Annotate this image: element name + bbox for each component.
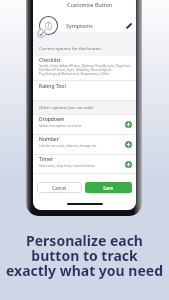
staticText: Start time, stop time, total duration (39, 163, 96, 168)
staticText: Current options for this button. (39, 45, 103, 51)
button[interactable] (33, 13, 136, 37)
staticText: Cancel (52, 185, 67, 191)
staticText: Dropdown (39, 116, 65, 123)
staticText: Save (103, 185, 114, 191)
button[interactable]: Dropdown (33, 114, 136, 134)
button[interactable]: Cancel (37, 182, 82, 193)
button[interactable]: Save (85, 182, 132, 193)
staticText: Number (39, 136, 59, 143)
staticText: Timer (39, 156, 53, 163)
staticText: Select one option at a time (39, 123, 82, 128)
button[interactable]: Edit (125, 22, 133, 30)
staticText: Customise Button (67, 1, 113, 8)
button[interactable]: Number (33, 134, 136, 154)
staticText: Symptoms (66, 22, 93, 29)
staticText: Checklist (39, 57, 61, 64)
staticText: Other options you can add (39, 104, 93, 110)
staticText: Personalize each button to track exactly… (0, 231, 169, 280)
staticText: Sweat, Item, Advert/Pains, Balance/Equil… (39, 63, 132, 76)
staticText: Use for amount, volume, dosage etc (39, 143, 97, 148)
button[interactable]: Timer (33, 154, 136, 174)
staticText: Rating Tool (39, 83, 66, 90)
